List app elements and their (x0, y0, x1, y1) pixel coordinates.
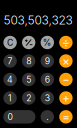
staticText: 7 (8, 56, 13, 66)
staticText: 2 (26, 93, 31, 103)
button[interactable]: 5 (22, 73, 35, 86)
button[interactable]: 3 (41, 91, 54, 105)
staticText: 8 (26, 56, 31, 66)
staticText: 6 (45, 74, 50, 85)
button[interactable]: Plus (59, 91, 73, 105)
button[interactable]: 9 (41, 54, 54, 68)
staticText: 5 (26, 74, 31, 85)
button[interactable]: 8 (22, 54, 35, 68)
staticText: − (62, 72, 70, 87)
button[interactable]: 2 (22, 91, 35, 105)
button[interactable]: Multiply (59, 54, 73, 68)
button[interactable]: Decimal point (41, 110, 54, 123)
staticText: = (62, 109, 70, 124)
button[interactable]: Minus (59, 73, 73, 86)
button[interactable]: Toggle sign (22, 36, 35, 49)
staticText: 1 (8, 93, 12, 103)
staticText: 3 (45, 93, 50, 103)
button[interactable]: 4 (3, 73, 17, 86)
staticText: ÷ (62, 35, 70, 50)
button[interactable]: 6 (41, 73, 54, 86)
button[interactable]: Zero (3, 110, 35, 123)
button[interactable]: Divide (59, 36, 73, 49)
button[interactable]: 1 (3, 91, 17, 105)
button[interactable]: Clear (3, 36, 17, 49)
staticText: 9 (45, 56, 50, 66)
staticText: C (7, 37, 13, 48)
staticText: 503,503,323 (3, 13, 72, 27)
staticText: % (43, 37, 52, 48)
staticText: 0 (8, 112, 13, 122)
staticText: . (46, 112, 48, 122)
staticText: × (62, 54, 70, 68)
staticText: + (62, 91, 70, 105)
button[interactable]: 7 (3, 54, 17, 68)
button[interactable]: Percent (41, 36, 54, 49)
staticText: 4 (7, 74, 13, 85)
button[interactable]: Equals (59, 110, 73, 123)
